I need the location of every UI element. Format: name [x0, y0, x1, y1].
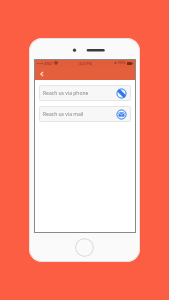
staticText: Reach us via mail — [43, 111, 84, 118]
button[interactable]: Reach us via phone — [39, 85, 131, 101]
staticText: 4:23 PM — [79, 61, 92, 66]
button[interactable]: Back — [37, 69, 47, 79]
button[interactable]: Reach us via mail — [39, 106, 131, 122]
staticText: ••••• AT&T — [37, 61, 53, 66]
button[interactable]: Home — [75, 238, 94, 257]
staticText: Reach us via phone — [43, 90, 89, 97]
staticText: ✱ 100% — [114, 61, 126, 65]
